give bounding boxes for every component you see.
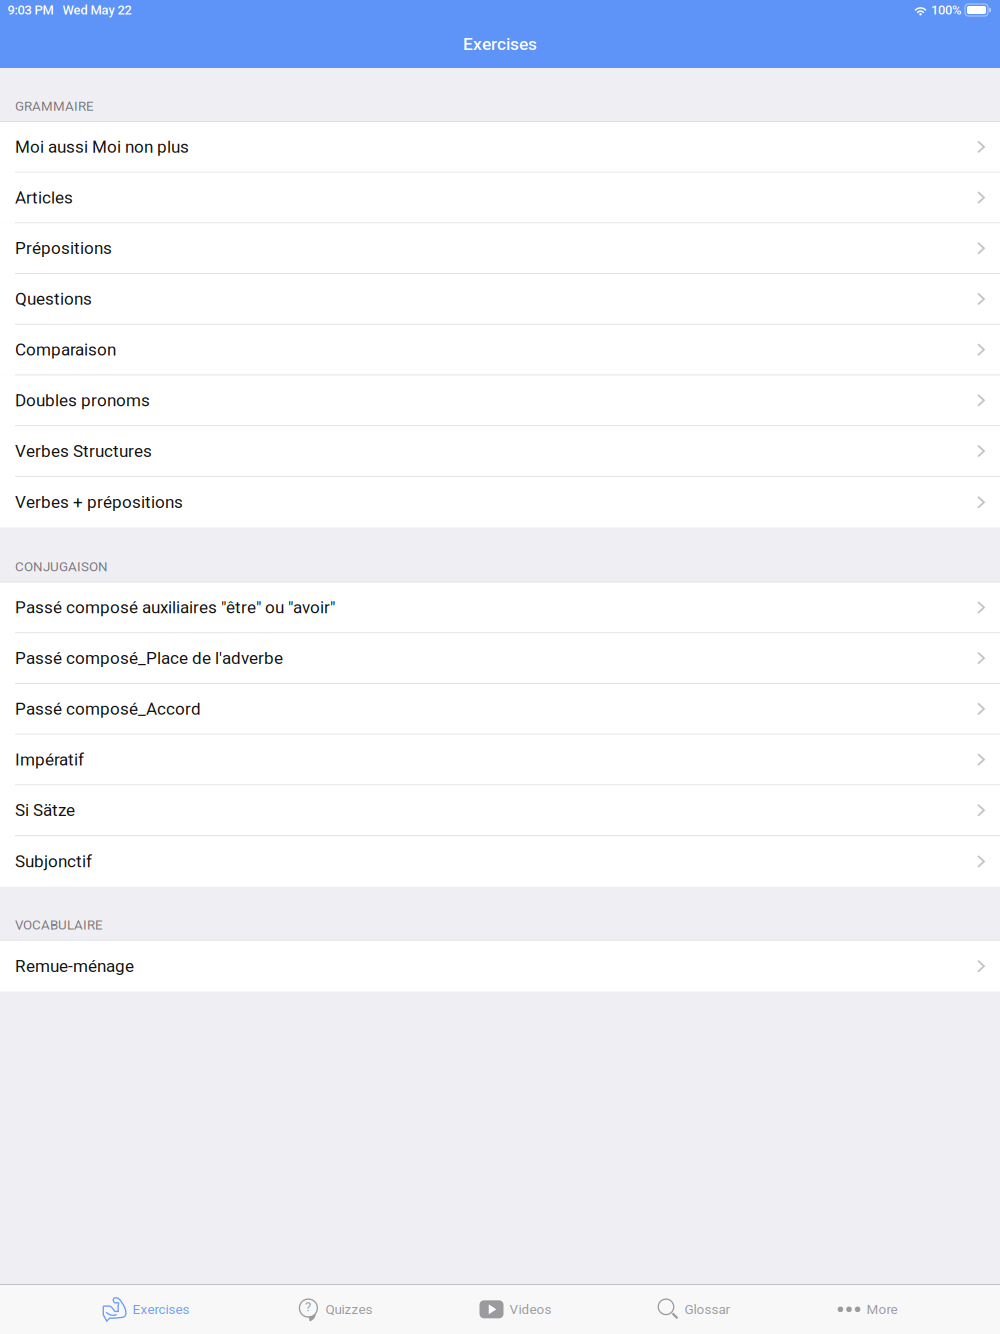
button[interactable]: Passé composé auxiliaires "être" ou "avo… (0, 583, 1000, 633)
staticText: Doubles pronoms (15, 390, 150, 410)
button[interactable]: Prépositions (0, 223, 1000, 274)
staticText: Exercises (132, 1301, 189, 1317)
staticText: Verbes Structures (15, 441, 152, 461)
staticText: Prépositions (15, 238, 112, 258)
staticText: Moi aussi Moi non plus (15, 137, 189, 157)
staticText: Si Sätze (15, 800, 75, 820)
staticText: 100% (928, 2, 965, 18)
button[interactable]: Subjonctif (0, 836, 1000, 887)
staticText: Remue-ménage (15, 956, 134, 976)
staticText: 9:03 PM (7, 2, 53, 18)
button[interactable]: Remue-ménage (0, 941, 1000, 991)
staticText: Passé composé auxiliaires "être" ou "avo… (15, 597, 335, 617)
button[interactable]: Doubles pronoms (0, 375, 1000, 426)
staticText: Verbes + prépositions (15, 492, 183, 512)
staticText: Comparaison (15, 340, 116, 360)
staticText: CONJUGAISON (15, 559, 108, 575)
staticText: Quizzes (325, 1301, 372, 1317)
staticText: ? (305, 1299, 311, 1314)
button[interactable]: Glossar (658, 1293, 730, 1325)
staticText: Impératif (15, 750, 84, 770)
button[interactable]: Moi aussi Moi non plus (0, 122, 1000, 173)
button[interactable]: Articles (0, 173, 1000, 223)
staticText: Passé composé_Place de l'adverbe (15, 648, 283, 668)
button[interactable]: More (837, 1294, 897, 1325)
button[interactable]: Verbes Structures (0, 426, 1000, 477)
staticText: Articles (15, 188, 73, 208)
button[interactable]: Verbes + prépositions (0, 477, 1000, 528)
staticText: Wed May 22 (53, 2, 131, 18)
staticText: Exercises (463, 34, 537, 54)
staticText: More (866, 1301, 897, 1317)
staticText: GRAMMAIRE (15, 98, 94, 114)
staticText: Videos (509, 1301, 551, 1317)
button[interactable]: ? (296, 1291, 372, 1328)
button[interactable]: Impératif (0, 735, 1000, 785)
staticText: VOCABULAIRE (15, 917, 103, 933)
staticText: Questions (15, 289, 92, 309)
button[interactable]: Si Sätze (0, 785, 1000, 836)
button[interactable]: Videos (479, 1294, 551, 1325)
button[interactable]: Exercises (102, 1291, 189, 1328)
button[interactable]: Passé composé_Place de l'adverbe (0, 633, 1000, 684)
button[interactable]: Passé composé_Accord (0, 684, 1000, 735)
staticText: Subjonctif (15, 851, 92, 871)
button[interactable]: Questions (0, 274, 1000, 325)
staticText: Glossar (684, 1301, 730, 1317)
staticText: Passé composé_Accord (15, 699, 201, 719)
button[interactable]: Comparaison (0, 325, 1000, 375)
